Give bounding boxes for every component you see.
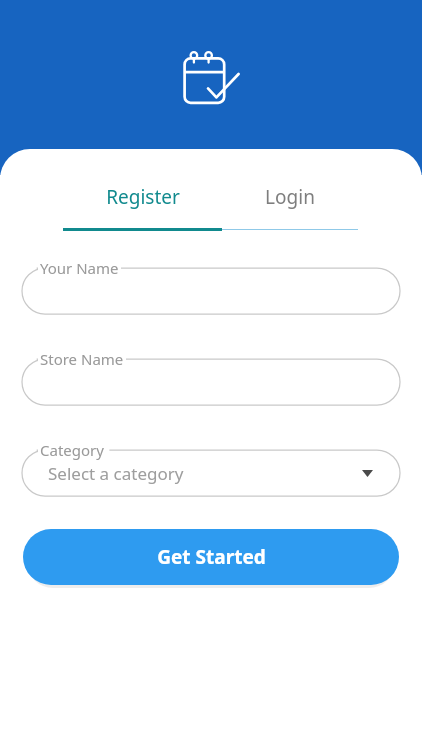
- other: Calendar check logo: [181, 50, 241, 110]
- staticText: Your Name: [40, 258, 119, 278]
- staticText: Select a category: [48, 462, 184, 485]
- staticText: Login: [265, 184, 315, 210]
- button[interactable]: Login: [222, 182, 358, 212]
- button[interactable]: Select a category: [22, 450, 400, 496]
- staticText: Category: [40, 440, 104, 460]
- button[interactable]: Register: [63, 182, 222, 212]
- button[interactable]: [22, 268, 400, 314]
- staticText: Get Started: [157, 544, 266, 570]
- button[interactable]: [22, 359, 400, 405]
- button[interactable]: Get Started: [23, 529, 399, 585]
- staticText: Register: [106, 184, 180, 210]
- staticText: Store Name: [40, 349, 124, 369]
